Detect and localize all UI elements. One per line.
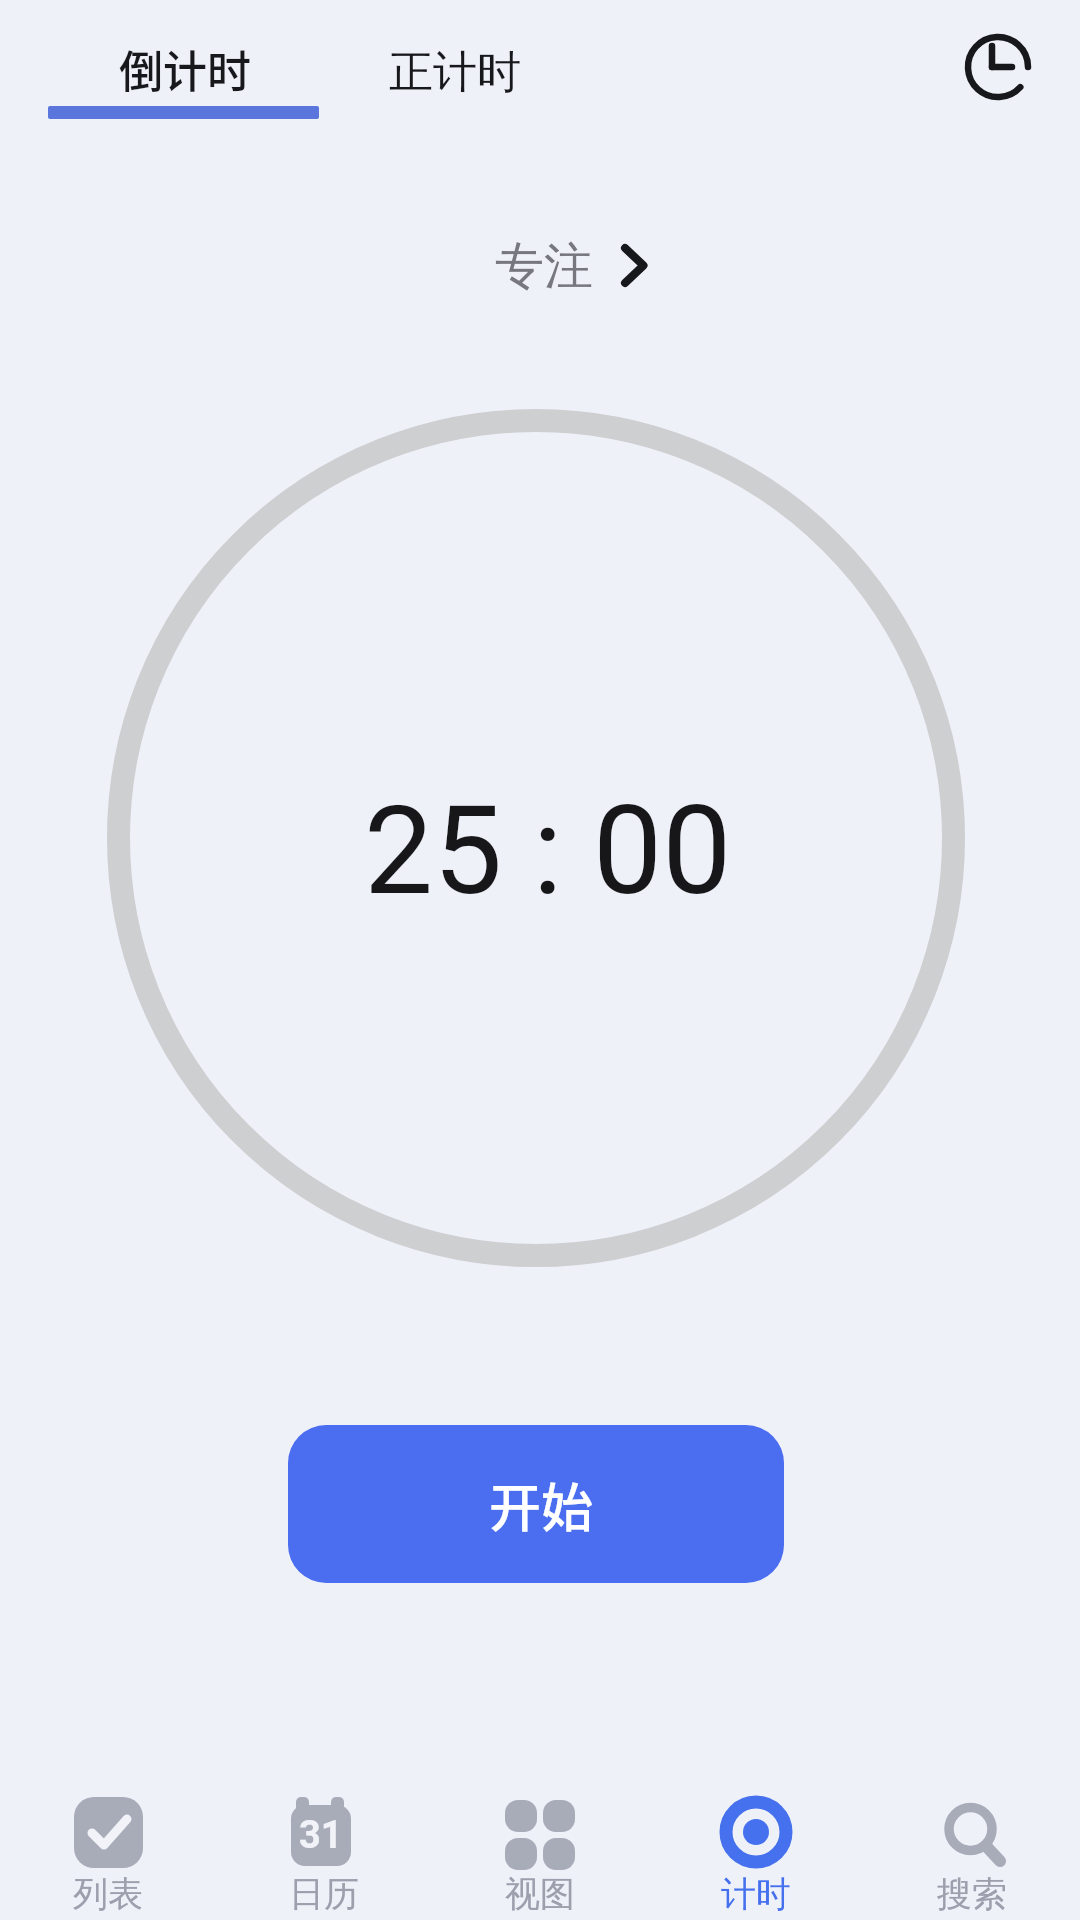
button[interactable]	[962, 31, 1034, 103]
button[interactable]: 搜索	[864, 1794, 1080, 1920]
staticText: 31	[299, 1813, 343, 1858]
staticText: 计时	[721, 1872, 791, 1916]
button[interactable]: 视图	[432, 1794, 648, 1920]
staticText: 日历	[289, 1872, 359, 1916]
staticText: 列表	[73, 1872, 143, 1916]
staticText: 视图	[505, 1872, 575, 1916]
button[interactable]: 开始	[288, 1425, 784, 1583]
button[interactable]: 倒计时	[50, 20, 320, 120]
staticText: 25 : 00	[364, 779, 732, 923]
staticText: 搜索	[937, 1872, 1007, 1916]
button[interactable]: 日历	[216, 1794, 432, 1920]
staticText: 专注	[495, 236, 593, 298]
button[interactable]: 计时	[648, 1794, 864, 1920]
button[interactable]: 列表	[0, 1794, 216, 1920]
button[interactable]: 正计时	[389, 45, 521, 100]
staticText: 开始	[489, 1467, 594, 1542]
staticText: 倒计时	[119, 37, 251, 101]
button[interactable]: 专注	[495, 236, 651, 298]
staticText: 正计时	[389, 45, 521, 100]
